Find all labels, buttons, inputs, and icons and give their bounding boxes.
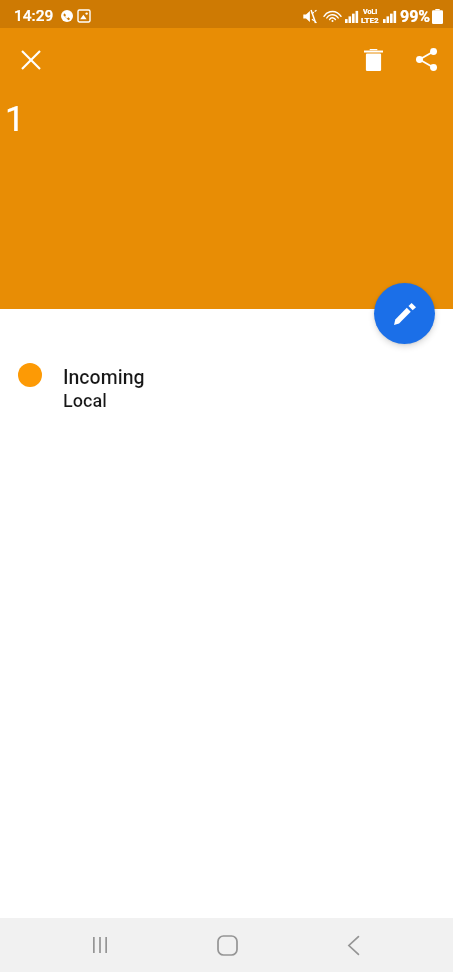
staticText: Local	[63, 390, 107, 411]
button[interactable]: Recents	[74, 919, 126, 971]
button[interactable]: Incoming	[0, 341, 453, 409]
staticText: Incoming	[63, 366, 145, 389]
button[interactable]: Close	[7, 36, 54, 83]
staticText: VoLI	[363, 8, 378, 16]
staticText: 14:29	[14, 7, 54, 25]
button[interactable]: Back	[327, 919, 379, 971]
button[interactable]: Edit	[374, 283, 435, 344]
button[interactable]: Share	[403, 36, 450, 83]
button[interactable]: Delete	[350, 36, 397, 83]
staticText: LTE2	[361, 16, 379, 25]
staticText: 99%	[400, 7, 431, 26]
button[interactable]: Home	[201, 919, 253, 971]
staticText: 1	[5, 99, 25, 140]
